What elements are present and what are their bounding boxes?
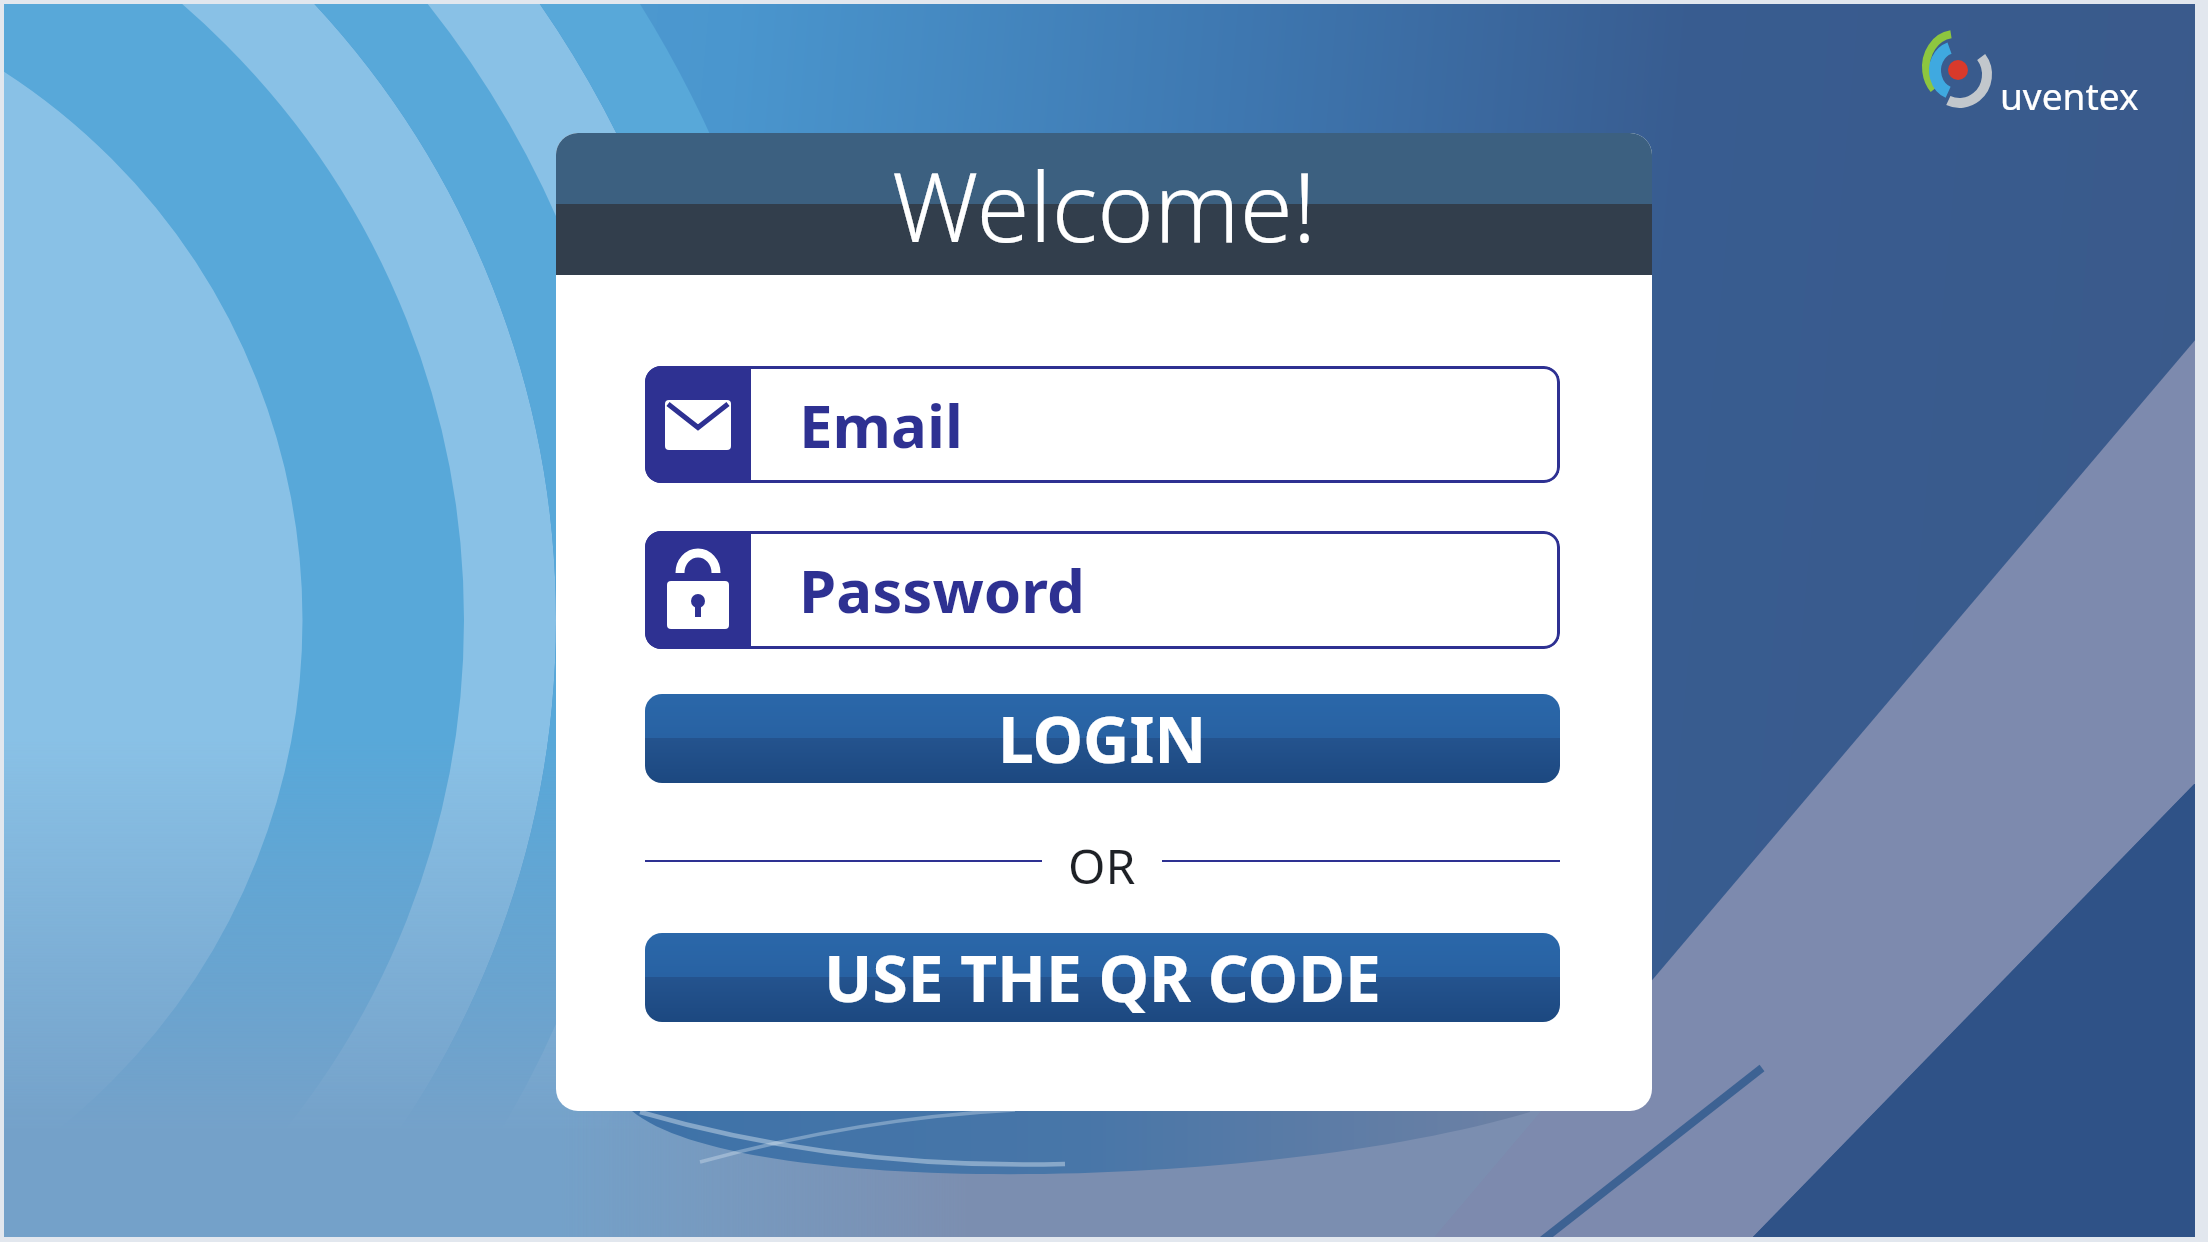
button[interactable]: Password [645,531,1560,649]
button[interactable]: LOGIN [645,694,1560,783]
button[interactable]: Email [645,366,1560,483]
staticText: uventex [2000,70,2139,120]
staticText: OR [1068,833,1136,889]
button[interactable]: USE THE QR CODE [645,933,1560,1022]
staticText: Password [799,549,1085,631]
staticText: Welcome! [892,139,1317,270]
staticText: LOGIN [998,695,1207,782]
staticText: Email [799,384,963,466]
staticText: USE THE QR CODE [824,934,1381,1021]
